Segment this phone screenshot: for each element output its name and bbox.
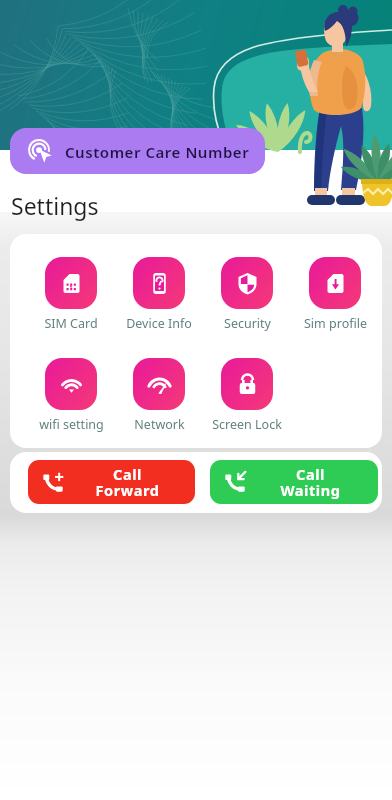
staticText: Call Waiting xyxy=(280,464,341,501)
staticText: Settings xyxy=(11,190,99,221)
staticText: Sim profile xyxy=(304,315,367,332)
staticText: Call Forward xyxy=(95,464,160,501)
button[interactable]: SIM Card xyxy=(27,257,115,332)
button[interactable]: wifi setting xyxy=(27,358,115,433)
button[interactable]: Security xyxy=(203,257,291,332)
button[interactable]: Call Forward xyxy=(28,460,195,504)
button[interactable]: Customer Care Number xyxy=(10,128,265,174)
staticText: Customer Care Number xyxy=(65,142,250,162)
button[interactable]: Device Info xyxy=(115,257,203,332)
button[interactable]: Screen Lock xyxy=(203,358,291,433)
staticText: SIM Card xyxy=(44,315,98,332)
staticText: Screen Lock xyxy=(212,416,282,433)
staticText: wifi setting xyxy=(39,416,104,433)
button[interactable]: Call Waiting xyxy=(210,460,378,504)
button[interactable]: Network xyxy=(115,358,203,433)
staticText: Security xyxy=(224,315,271,332)
button[interactable]: Sim profile xyxy=(291,257,379,332)
staticText: Network xyxy=(134,416,185,433)
staticText: Device Info xyxy=(126,315,192,332)
